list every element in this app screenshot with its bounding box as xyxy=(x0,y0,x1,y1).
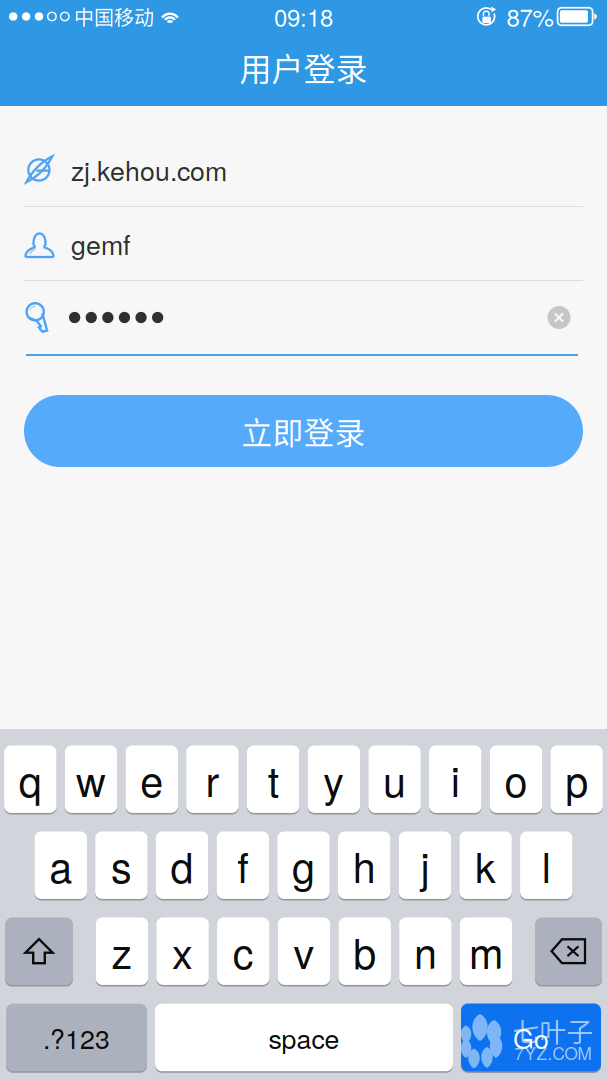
staticText: 用户登录 xyxy=(239,44,367,90)
staticText: r xyxy=(205,750,219,809)
staticText: 七叶子 xyxy=(512,1011,593,1050)
button[interactable]: 七叶子 xyxy=(461,1003,601,1073)
staticText: 7YZ.COM xyxy=(514,1040,591,1065)
staticText: e xyxy=(140,750,163,809)
button[interactable]: a xyxy=(34,831,87,901)
staticText: o xyxy=(504,750,527,809)
button[interactable]: y xyxy=(308,745,360,815)
staticText: v xyxy=(293,922,314,981)
button[interactable]: w xyxy=(65,745,117,815)
button[interactable]: Clear text xyxy=(541,299,577,335)
staticText: 中国移动 xyxy=(74,2,154,31)
button[interactable]: c xyxy=(217,917,269,987)
button[interactable]: q xyxy=(4,745,57,815)
staticText: z xyxy=(111,922,132,981)
staticText: a xyxy=(49,836,72,895)
staticText: h xyxy=(353,836,376,895)
button[interactable]: m xyxy=(460,917,512,987)
button[interactable]: r xyxy=(186,745,239,815)
button[interactable]: p xyxy=(550,745,603,815)
button[interactable]: z xyxy=(96,917,148,987)
staticText: q xyxy=(19,750,42,809)
staticText: l xyxy=(542,836,551,895)
staticText: space xyxy=(268,1018,339,1057)
button[interactable]: Shift xyxy=(5,917,73,987)
button[interactable]: k xyxy=(459,831,512,901)
button[interactable]: j xyxy=(399,831,451,901)
staticText: s xyxy=(111,836,132,895)
button[interactable]: d xyxy=(156,831,208,901)
staticText: zj.kehou.com xyxy=(71,150,227,189)
button[interactable]: s xyxy=(95,831,148,901)
button[interactable]: h xyxy=(338,831,390,901)
staticText: 立即登录 xyxy=(241,409,365,453)
button[interactable]: t xyxy=(247,745,299,815)
staticText: u xyxy=(383,750,406,809)
staticText: y xyxy=(323,750,344,809)
staticText: p xyxy=(565,750,588,809)
button[interactable]: i xyxy=(429,745,481,815)
staticText: b xyxy=(353,922,376,981)
button[interactable]: u xyxy=(368,745,421,815)
button[interactable]: v xyxy=(278,917,330,987)
staticText: m xyxy=(469,922,503,981)
staticText: j xyxy=(420,836,429,895)
staticText: t xyxy=(268,750,279,809)
button[interactable]: f xyxy=(217,831,269,901)
button[interactable]: .?123 xyxy=(6,1004,147,1073)
staticText: k xyxy=(475,836,496,895)
button[interactable]: 立即登录 xyxy=(24,395,583,467)
staticText: d xyxy=(171,836,194,895)
staticText: w xyxy=(76,750,106,809)
staticText: c xyxy=(233,922,254,981)
button[interactable]: n xyxy=(399,917,452,987)
staticText: x xyxy=(172,922,193,981)
button[interactable]: x xyxy=(156,917,209,987)
button[interactable]: space xyxy=(155,1004,453,1073)
button[interactable]: g xyxy=(277,831,330,901)
button[interactable]: e xyxy=(125,745,178,815)
staticText: n xyxy=(414,922,437,981)
staticText: 87% xyxy=(507,0,554,34)
button[interactable]: l xyxy=(520,831,572,901)
staticText: g xyxy=(292,836,315,895)
staticText: Go xyxy=(513,1018,549,1057)
staticText: 09:18 xyxy=(274,0,333,34)
staticText: gemf xyxy=(71,224,130,263)
button[interactable]: o xyxy=(490,745,542,815)
staticText: f xyxy=(237,836,248,895)
staticText: i xyxy=(451,750,460,809)
button[interactable]: b xyxy=(338,917,391,987)
button[interactable]: Delete xyxy=(535,917,602,987)
staticText: .?123 xyxy=(43,1018,110,1057)
